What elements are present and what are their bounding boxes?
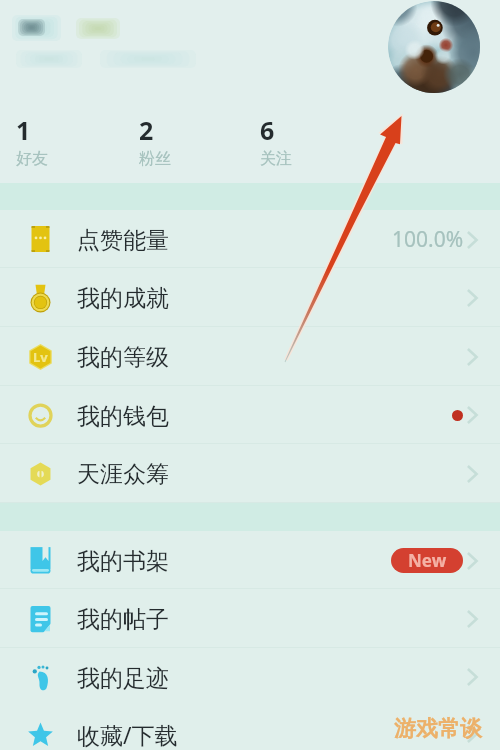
staticText: 我的成就 (77, 284, 169, 313)
button[interactable]: 我的足迹 (0, 648, 500, 706)
button[interactable]: 我的书架 (0, 531, 500, 589)
staticText: 点赞能量 (77, 226, 169, 255)
staticText: 2 (139, 113, 154, 147)
button[interactable]: Profile avatar (388, 1, 480, 93)
button[interactable]: 点赞能量 (0, 210, 500, 268)
staticText: 收藏/下载 (77, 719, 178, 750)
button[interactable]: 我的成就 (0, 268, 500, 327)
staticText: 天涯众筹 (77, 460, 169, 489)
button[interactable]: 1 (16, 113, 48, 169)
staticText: 1 (16, 113, 31, 147)
staticText: 我的钱包 (77, 402, 169, 431)
staticText: 好友 (16, 149, 48, 169)
staticText: Lv (33, 348, 48, 366)
staticText: New (408, 549, 447, 572)
button[interactable]: 6 (260, 113, 292, 169)
staticText: 我的足迹 (77, 664, 169, 693)
staticText: 我的等级 (77, 343, 169, 372)
staticText: 我的帖子 (77, 605, 169, 634)
staticText: 粉丝 (139, 149, 171, 169)
button[interactable]: 我的帖子 (0, 589, 500, 648)
button[interactable]: Lv (0, 327, 500, 386)
staticText: 游戏常谈 (394, 715, 482, 743)
button[interactable]: 天涯众筹 (0, 444, 500, 503)
button[interactable]: 我的钱包 (0, 386, 500, 444)
staticText: 100.0% (392, 225, 464, 254)
staticText: 6 (260, 113, 275, 147)
staticText: 我的书架 (77, 547, 169, 576)
button[interactable]: 2 (139, 113, 171, 169)
button[interactable]: 收藏/下载 (0, 704, 500, 750)
staticText: 关注 (260, 149, 292, 169)
